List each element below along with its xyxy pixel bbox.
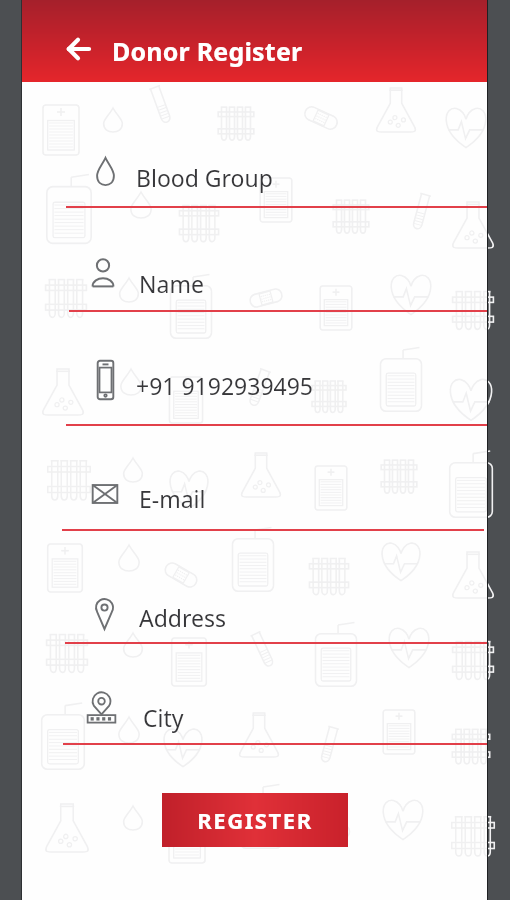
button[interactable]: Blood Group (45, 143, 488, 211)
staticText: Donor Register (112, 34, 303, 68)
button[interactable]: Address (45, 580, 488, 650)
button[interactable]: City (45, 682, 488, 752)
staticText: Blood Group (136, 162, 273, 193)
staticText: +91 9192939495 (136, 370, 314, 401)
button[interactable]: E-mail (45, 465, 488, 535)
staticText: City (143, 702, 184, 733)
button[interactable]: Back (55, 26, 101, 72)
staticText: E-mail (139, 483, 206, 514)
button[interactable]: +91 9192939495 (45, 350, 488, 428)
staticText: Address (139, 602, 227, 633)
button[interactable]: Name (45, 246, 488, 314)
button[interactable]: REGISTER (162, 793, 348, 847)
staticText: REGISTER (197, 805, 313, 835)
staticText: Name (139, 268, 204, 299)
